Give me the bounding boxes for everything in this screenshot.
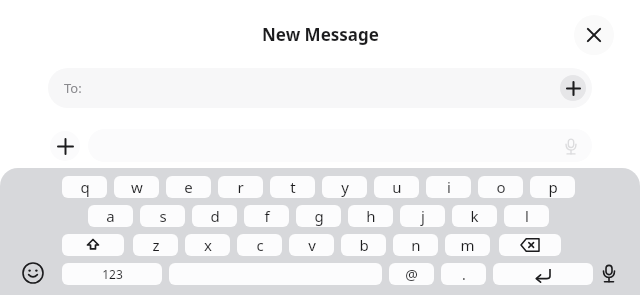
staticText: e: [184, 177, 193, 197]
staticText: k: [470, 206, 479, 226]
staticText: r: [237, 177, 244, 197]
button[interactable]: Enter: [493, 263, 593, 285]
staticText: n: [411, 235, 421, 255]
button[interactable]: 123: [62, 263, 162, 285]
button[interactable]: .: [441, 263, 486, 285]
staticText: m: [460, 235, 475, 255]
button[interactable]: q: [62, 176, 107, 198]
button[interactable]: Close: [574, 15, 614, 55]
staticText: h: [366, 206, 376, 226]
button[interactable]: y: [322, 176, 367, 198]
staticText: o: [496, 177, 506, 197]
button[interactable]: x: [185, 234, 230, 256]
staticText: c: [256, 235, 264, 255]
staticText: s: [159, 206, 167, 226]
button[interactable]: n: [393, 234, 438, 256]
button[interactable]: m: [445, 234, 490, 256]
staticText: z: [152, 235, 160, 255]
staticText: f: [264, 206, 270, 226]
button[interactable]: o: [478, 176, 523, 198]
button[interactable]: Emoji: [20, 260, 46, 286]
staticText: @: [405, 265, 418, 284]
button[interactable]: Voice typing: [596, 260, 622, 286]
button[interactable]: e: [166, 176, 211, 198]
staticText: w: [131, 177, 143, 197]
staticText: .: [462, 265, 466, 284]
staticText: j: [421, 206, 425, 226]
button[interactable]: Add recipient: [560, 75, 586, 101]
staticText: a: [106, 206, 115, 226]
staticText: t: [290, 177, 296, 197]
button[interactable]: Backspace: [499, 234, 561, 256]
button[interactable]: Add attachment: [50, 131, 80, 161]
button[interactable]: g: [296, 205, 341, 227]
button[interactable]: u: [374, 176, 419, 198]
staticText: q: [80, 177, 90, 197]
staticText: x: [204, 235, 212, 255]
staticText: i: [447, 177, 451, 197]
button[interactable]: a: [88, 205, 133, 227]
staticText: 123: [102, 266, 123, 282]
button[interactable]: l: [504, 205, 549, 227]
button[interactable]: To:: [48, 68, 592, 108]
button[interactable]: Shift: [62, 234, 124, 256]
staticText: To:: [64, 79, 82, 97]
staticText: v: [308, 235, 316, 255]
button[interactable]: i: [426, 176, 471, 198]
button[interactable]: s: [140, 205, 185, 227]
button[interactable]: j: [400, 205, 445, 227]
staticText: l: [525, 206, 529, 226]
button[interactable]: f: [244, 205, 289, 227]
button[interactable]: w: [114, 176, 159, 198]
staticText: u: [392, 177, 402, 197]
button[interactable]: p: [530, 176, 575, 198]
button[interactable]: c: [237, 234, 282, 256]
button[interactable]: t: [270, 176, 315, 198]
staticText: y: [341, 177, 349, 197]
button[interactable]: b: [341, 234, 386, 256]
other: Voice input: [562, 137, 580, 155]
button[interactable]: h: [348, 205, 393, 227]
staticText: p: [548, 177, 558, 197]
staticText: d: [210, 206, 220, 226]
staticText: b: [359, 235, 369, 255]
button[interactable]: k: [452, 205, 497, 227]
button[interactable]: r: [218, 176, 263, 198]
button[interactable]: @: [389, 263, 434, 285]
button[interactable]: v: [289, 234, 334, 256]
staticText: g: [314, 206, 324, 226]
staticText: New Message: [262, 23, 379, 46]
button[interactable]: d: [192, 205, 237, 227]
button[interactable]: z: [133, 234, 178, 256]
